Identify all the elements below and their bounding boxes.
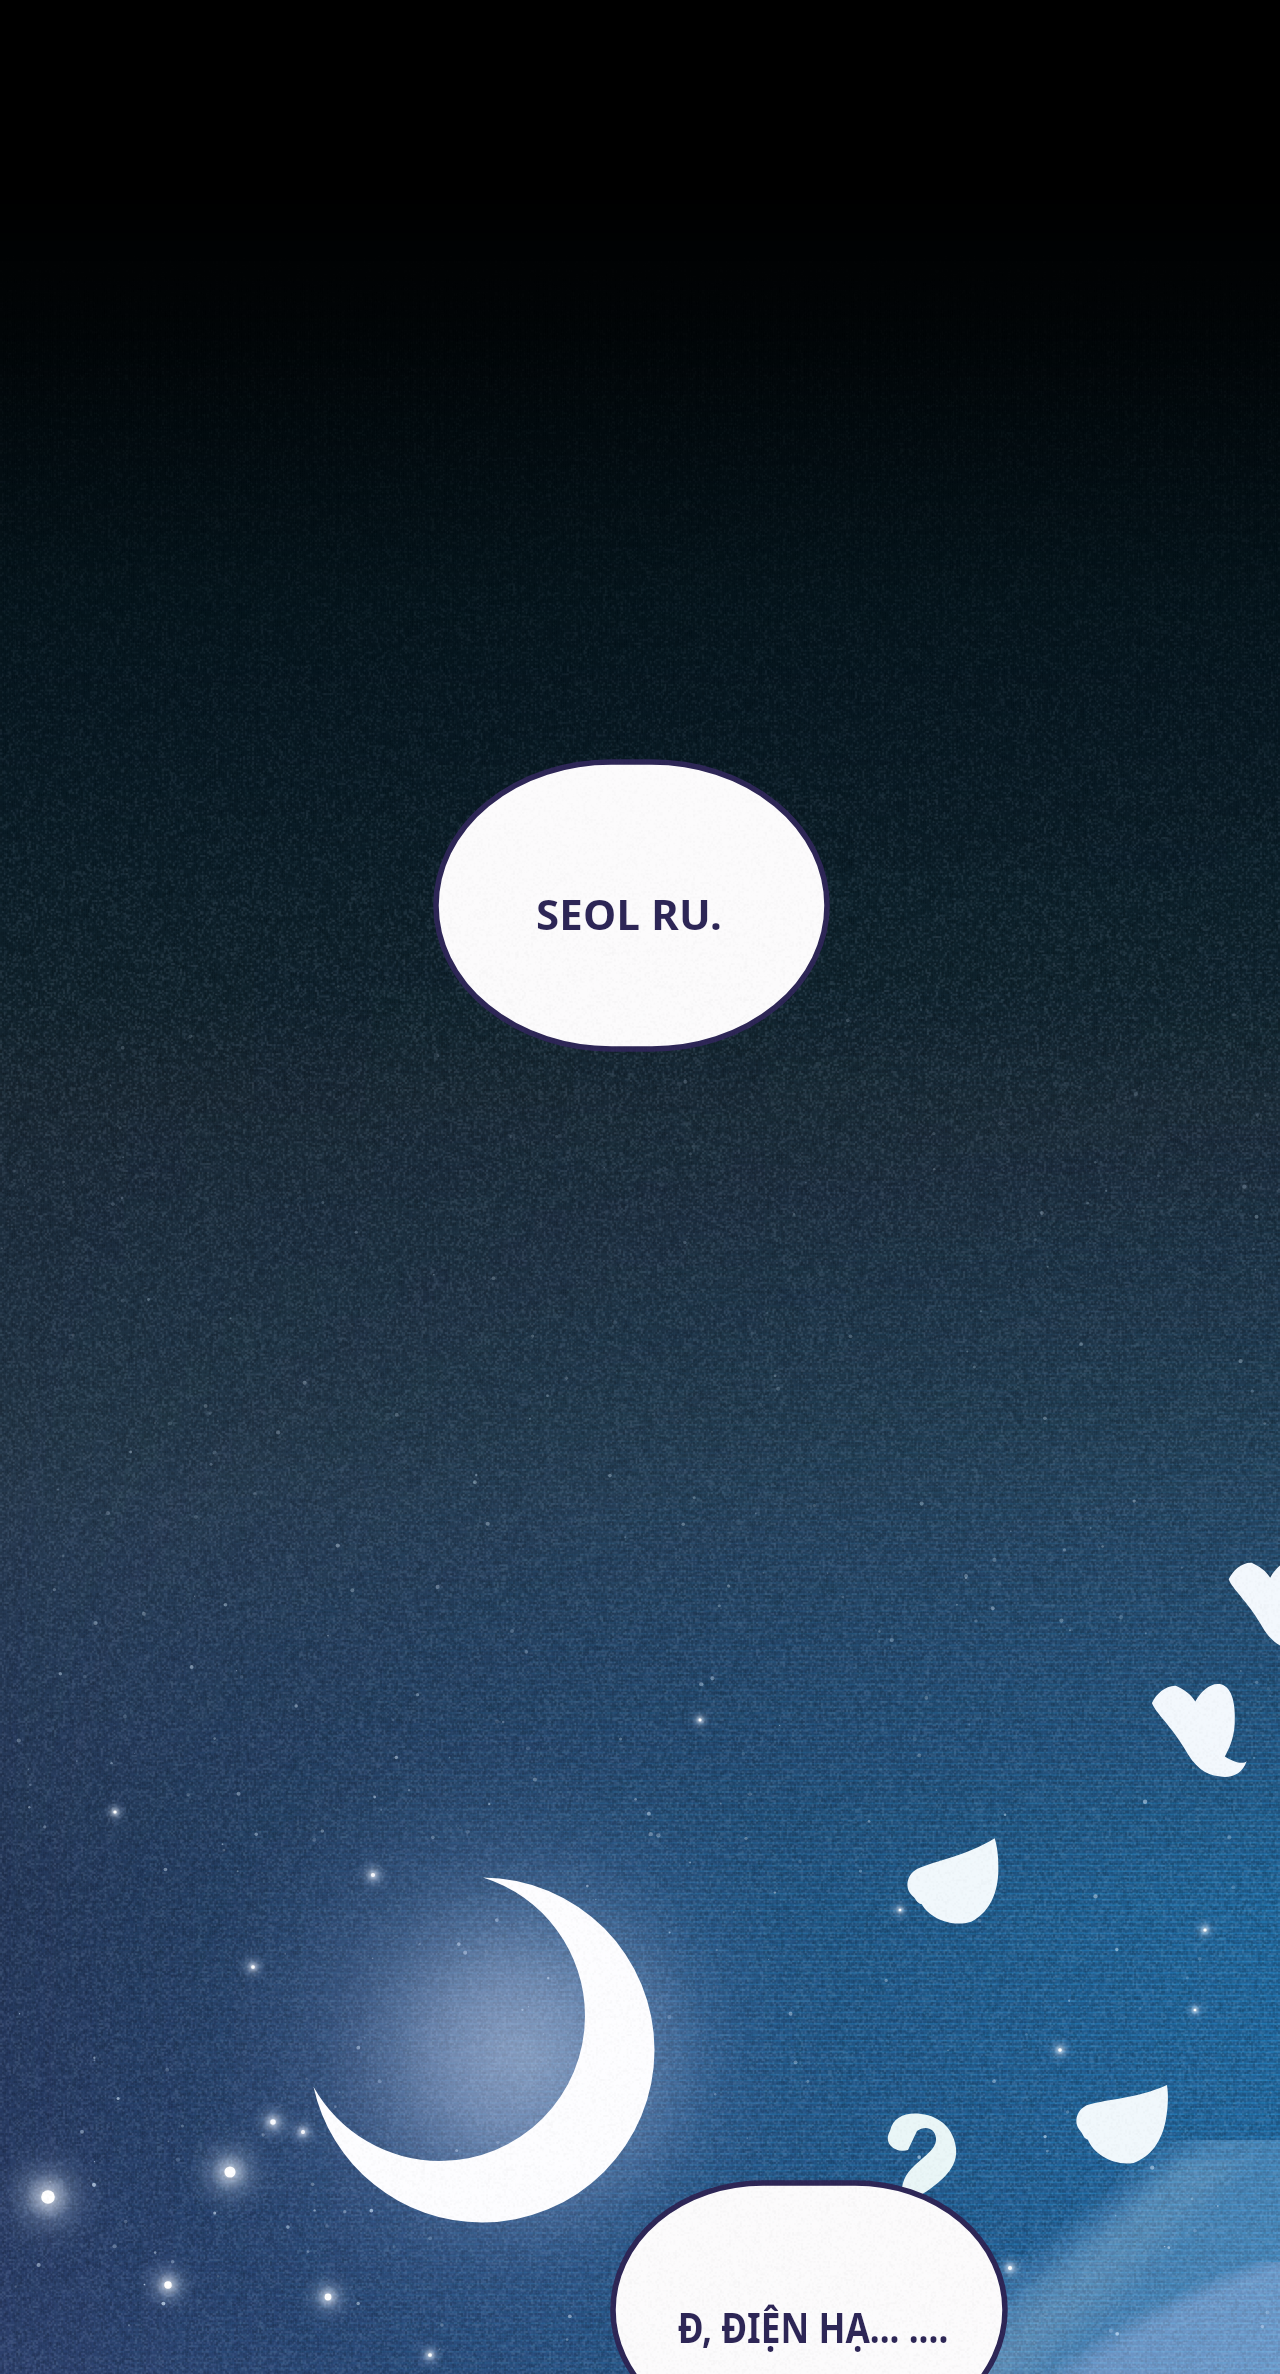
button[interactable]: Webtoon page, tap to show reader control… [0, 0, 1280, 2374]
button[interactable]: Speech bubble: SEOL RU. [436, 762, 827, 1049]
button[interactable]: Speech bubble: Đ, ĐIỆN HẠ [613, 2183, 1005, 2374]
